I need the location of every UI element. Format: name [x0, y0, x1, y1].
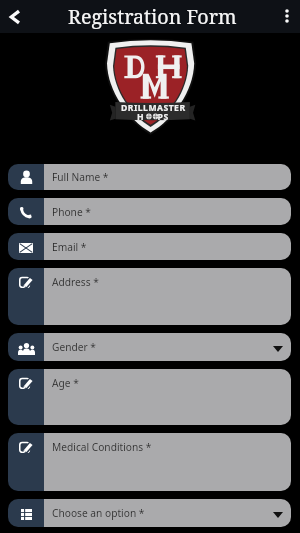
- staticText: H PS: [137, 111, 169, 123]
- button[interactable]: Gender *: [8, 333, 291, 361]
- button[interactable]: Medical Conditions *: [8, 433, 291, 491]
- staticText: Medical Conditions *: [52, 440, 152, 454]
- staticText: Gender *: [52, 340, 96, 354]
- staticText: Email *: [52, 240, 87, 254]
- button[interactable]: Back: [0, 0, 30, 33]
- button[interactable]: Email *: [8, 233, 291, 260]
- staticText: DRILLMASTER: [121, 102, 186, 114]
- button[interactable]: Age *: [8, 369, 291, 425]
- button[interactable]: Choose an option *: [8, 499, 291, 527]
- button[interactable]: More options: [272, 0, 300, 33]
- button[interactable]: Full Name *: [8, 164, 291, 190]
- staticText: Age *: [52, 376, 79, 390]
- staticText: Phone *: [52, 205, 91, 219]
- staticText: Full Name *: [52, 170, 109, 184]
- staticText: Address *: [52, 275, 99, 289]
- staticText: Registration Form: [68, 3, 237, 30]
- button[interactable]: Address *: [8, 268, 291, 325]
- button[interactable]: Phone *: [8, 198, 291, 225]
- staticText: Choose an option *: [52, 506, 145, 520]
